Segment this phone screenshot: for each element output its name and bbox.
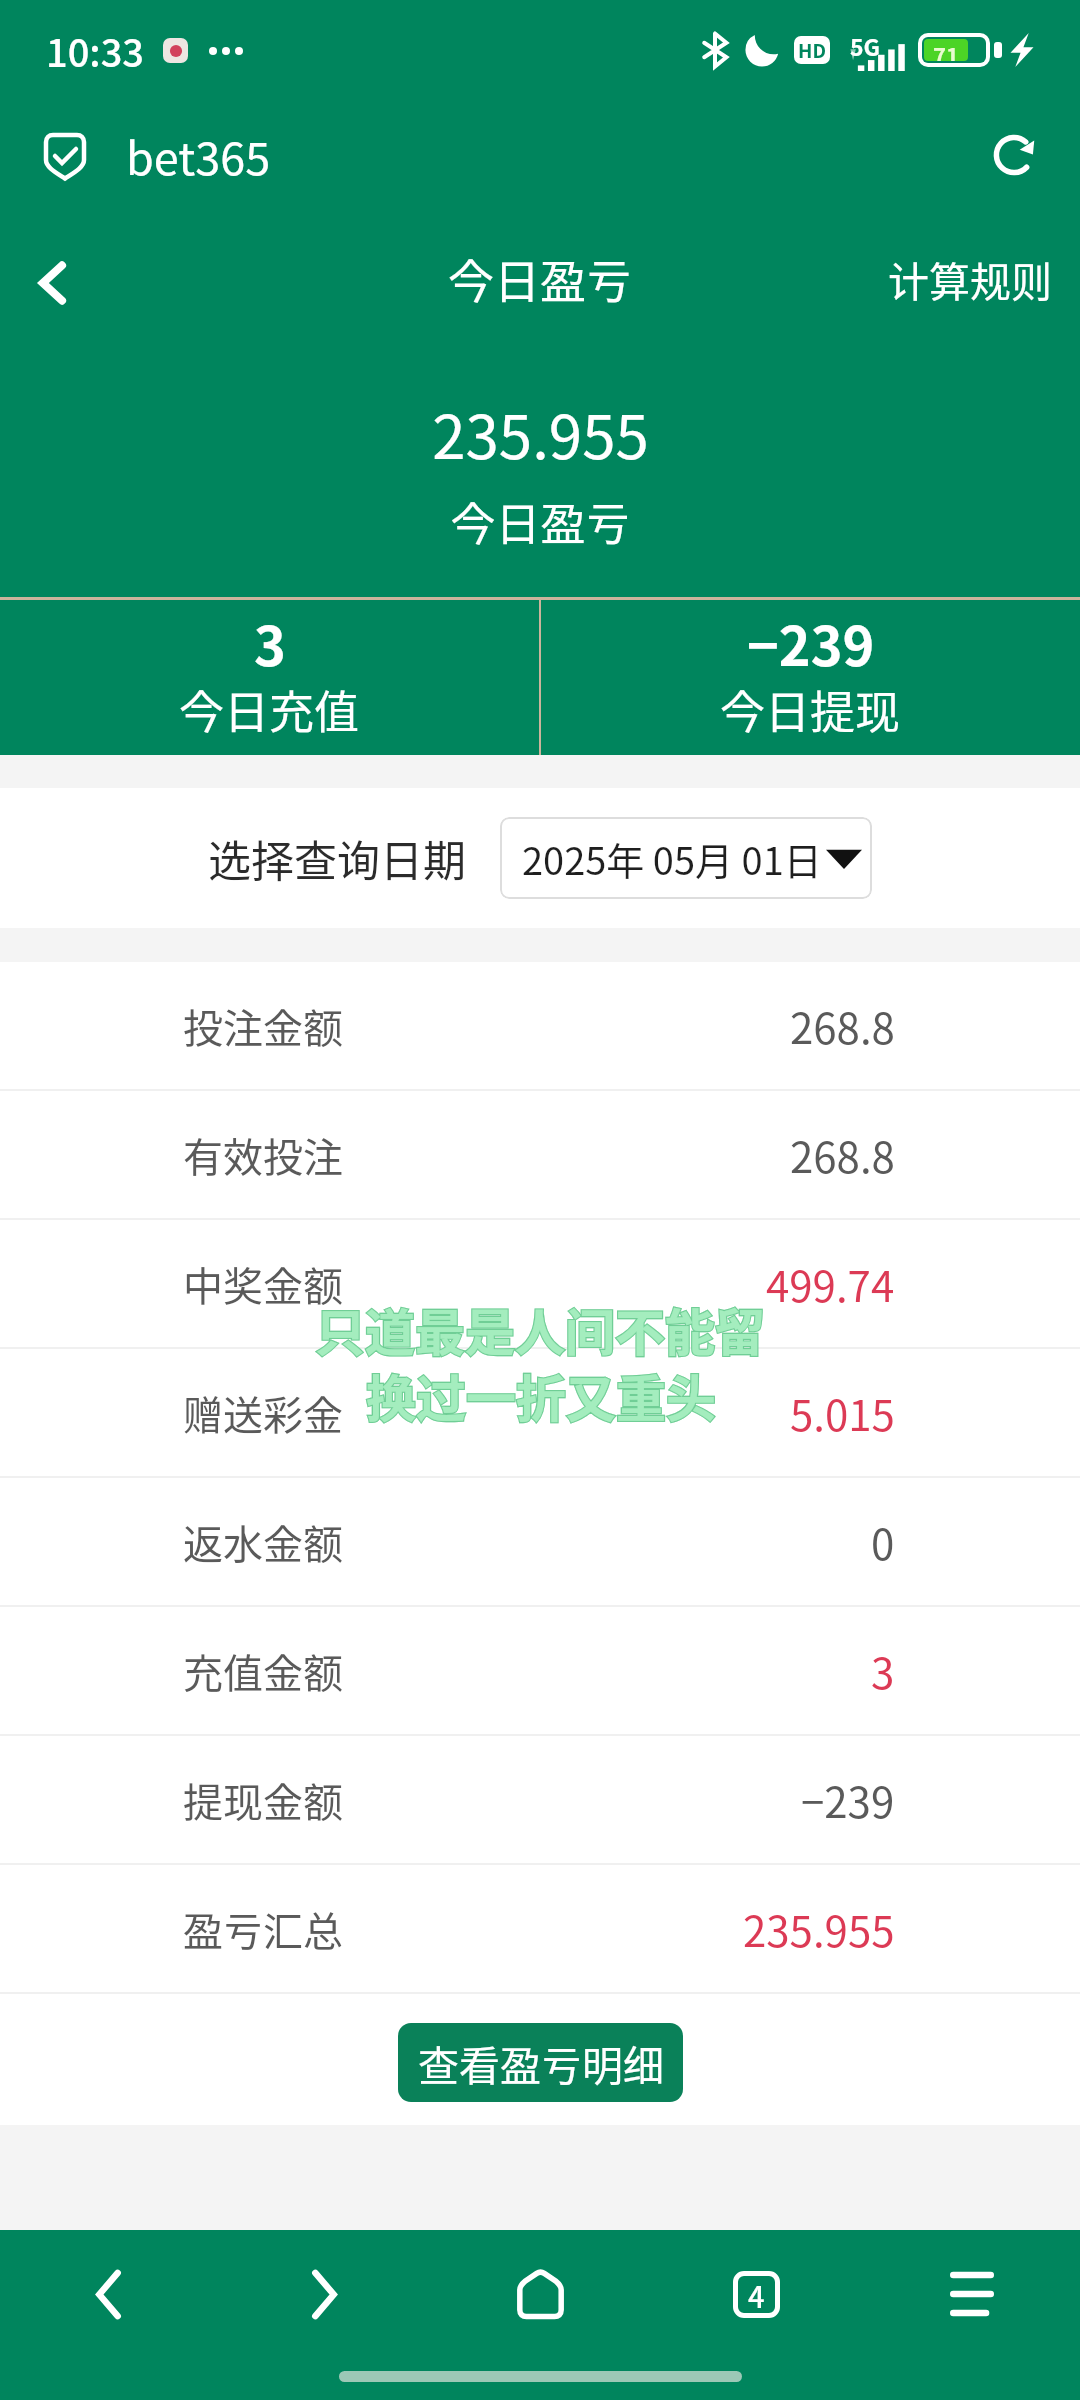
staticText: 235.955 bbox=[743, 1898, 895, 1959]
button[interactable]: 充值金额 bbox=[0, 1607, 1080, 1736]
staticText: 268.8 bbox=[790, 995, 895, 1056]
staticText: −239 bbox=[801, 1769, 895, 1830]
staticText: 中奖金额 bbox=[183, 1255, 343, 1313]
button[interactable]: 查看盈亏明细 bbox=[398, 2023, 683, 2102]
staticText: 71 bbox=[933, 39, 959, 61]
button[interactable]: 返水金额 bbox=[0, 1478, 1080, 1607]
staticText: 有效投注 bbox=[183, 1126, 343, 1184]
button[interactable]: Menu bbox=[930, 2252, 1014, 2336]
button[interactable]: 计算规则 bbox=[858, 231, 1080, 326]
staticText: 今日盈亏 bbox=[448, 245, 632, 312]
staticText: 选择查询日期 bbox=[208, 827, 466, 889]
button[interactable]: 2025年 05月 01日 bbox=[500, 817, 872, 899]
staticText: 只道最是人间不能留 bbox=[315, 1293, 765, 1365]
staticText: 提现金额 bbox=[183, 1771, 343, 1829]
button[interactable]: 盈亏汇总 bbox=[0, 1865, 1080, 1994]
staticText: 今日充值 bbox=[179, 677, 360, 742]
staticText: 0 bbox=[871, 1511, 895, 1572]
staticText: 499.74 bbox=[766, 1253, 895, 1314]
staticText: 10:33 bbox=[46, 23, 144, 78]
staticText: 查看盈亏明细 bbox=[418, 2033, 664, 2092]
staticText: 今日盈亏 bbox=[450, 489, 631, 554]
button[interactable]: 赠送彩金 bbox=[0, 1349, 1080, 1478]
button[interactable]: Back bbox=[7, 238, 97, 328]
button[interactable]: −239 bbox=[541, 600, 1080, 755]
staticText: 返水金额 bbox=[183, 1513, 343, 1571]
staticText: 充值金额 bbox=[183, 1642, 343, 1700]
button[interactable]: 投注金额 bbox=[0, 962, 1080, 1091]
staticText: 2025年 05月 01日 bbox=[522, 831, 822, 886]
button[interactable]: Refresh bbox=[972, 113, 1056, 197]
button[interactable]: Home bbox=[498, 2252, 582, 2336]
staticText: 投注金额 bbox=[183, 997, 343, 1055]
staticText: 3 bbox=[254, 603, 286, 681]
staticText: bet365 bbox=[126, 123, 271, 188]
staticText: 4 bbox=[748, 2274, 765, 2316]
staticText: −239 bbox=[747, 603, 875, 681]
button[interactable]: Forward bbox=[282, 2252, 366, 2336]
staticText: 3 bbox=[871, 1640, 895, 1701]
staticText: 今日提现 bbox=[720, 677, 901, 742]
button[interactable]: 有效投注 bbox=[0, 1091, 1080, 1220]
staticText: HD bbox=[798, 36, 826, 64]
staticText: 5.015 bbox=[790, 1382, 895, 1443]
staticText: 换过一折又重头 bbox=[366, 1359, 716, 1431]
staticText: 268.8 bbox=[790, 1124, 895, 1185]
button[interactable]: 中奖金额 bbox=[0, 1220, 1080, 1349]
staticText: 盈亏汇总 bbox=[183, 1900, 343, 1958]
staticText: 只道最是人间不能留 bbox=[315, 1293, 765, 1365]
staticText: 计算规则 bbox=[888, 249, 1052, 308]
button[interactable]: 提现金额 bbox=[0, 1736, 1080, 1865]
staticText: 赠送彩金 bbox=[183, 1384, 343, 1442]
staticText: 5G bbox=[850, 29, 881, 62]
button[interactable]: 3 bbox=[0, 600, 539, 755]
staticText: 235.955 bbox=[432, 389, 649, 476]
button[interactable]: Tabs bbox=[714, 2252, 798, 2336]
staticText: 换过一折又重头 bbox=[366, 1359, 716, 1431]
button[interactable]: Back bbox=[66, 2252, 150, 2336]
